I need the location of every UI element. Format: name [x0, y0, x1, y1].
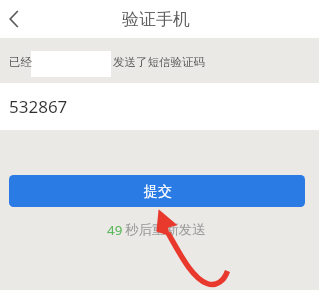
staticText: 发送了短信验证码 [113, 55, 205, 69]
button[interactable]: 提交 [9, 175, 305, 207]
button[interactable]: Back [0, 0, 28, 38]
staticText: 提交 [144, 183, 172, 201]
staticText: 验证手机 [122, 9, 190, 30]
staticText: 已经 [9, 55, 32, 69]
staticText: 532867 [9, 95, 68, 118]
staticText: 秒后重新发送 [125, 221, 206, 238]
staticText: 49 [107, 221, 123, 239]
